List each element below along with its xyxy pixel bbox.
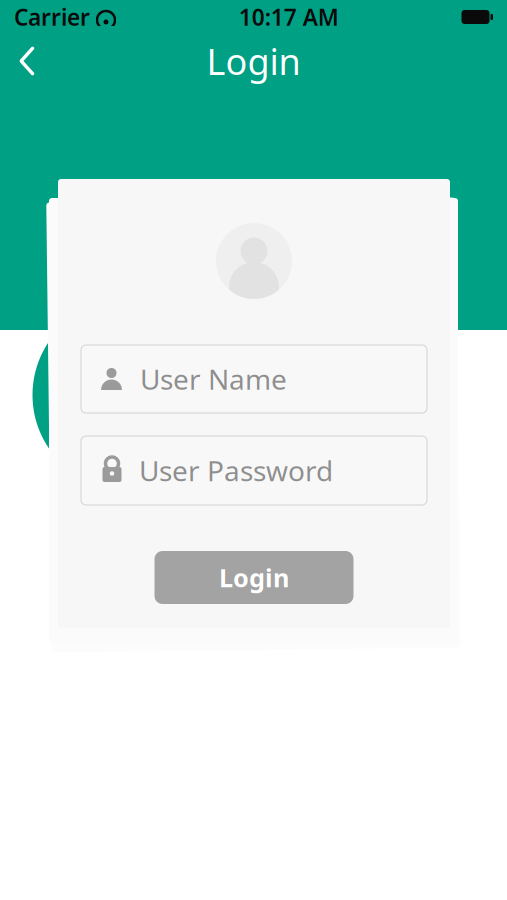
staticText: 10:17 AM [239, 2, 339, 32]
staticText: Login [206, 37, 300, 85]
button[interactable]: Login [154, 551, 353, 604]
button[interactable]: Back [0, 34, 54, 88]
button[interactable]: User Name [81, 345, 427, 413]
staticText: Carrier [14, 2, 90, 32]
staticText: Login [219, 561, 289, 594]
button[interactable]: User Password [81, 436, 427, 505]
staticText: User Password [139, 452, 333, 489]
staticText: User Name [140, 360, 287, 398]
